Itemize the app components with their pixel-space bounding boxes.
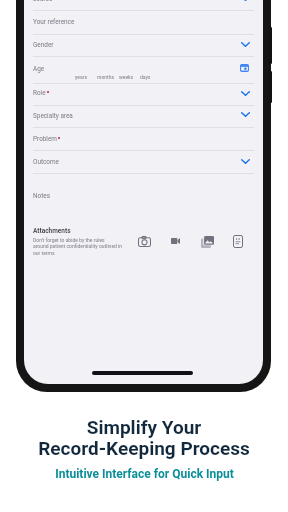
staticText: Your reference <box>33 18 75 26</box>
staticText: Intuitive Interface for Quick Input <box>55 467 234 481</box>
button[interactable]: Pick date <box>240 64 249 72</box>
staticText: Age <box>33 65 45 73</box>
staticText: weeks <box>119 74 134 80</box>
button[interactable]: Specialty area <box>24 104 263 127</box>
staticText: Don't forget to abide by the rules aroun… <box>33 237 123 257</box>
staticText: days <box>140 74 151 80</box>
staticText: Attachments <box>33 227 71 235</box>
button[interactable]: Outcome <box>24 150 263 173</box>
button[interactable]: Role <box>24 83 263 105</box>
staticText: Outcome <box>33 158 59 166</box>
staticText: Simplify Your Record-Keeping Process <box>38 416 250 459</box>
staticText: Role <box>33 89 46 97</box>
staticText: source <box>33 0 53 3</box>
staticText: months <box>97 74 114 80</box>
staticText: Problem <box>33 135 57 143</box>
button[interactable]: source <box>24 0 263 10</box>
button[interactable]: Gender <box>24 34 263 56</box>
button[interactable]: Age <box>24 56 263 83</box>
button[interactable]: Take photo <box>138 236 151 247</box>
staticText: years <box>75 74 87 80</box>
staticText: Notes <box>33 192 50 200</box>
staticText: Specialty area <box>33 112 73 120</box>
button[interactable]: Your reference <box>24 10 263 34</box>
button[interactable]: Choose from gallery <box>201 236 214 248</box>
staticText: Gender <box>33 41 54 49</box>
button[interactable]: Record video <box>171 238 180 244</box>
button[interactable]: Attach document <box>233 235 243 248</box>
button[interactable]: Problem <box>24 127 263 150</box>
